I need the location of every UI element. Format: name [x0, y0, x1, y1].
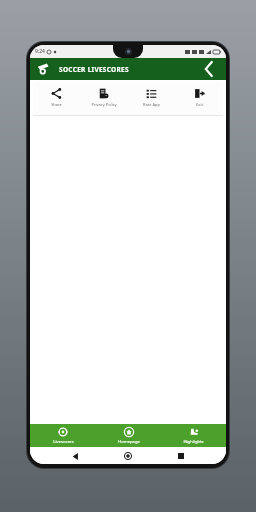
- staticText: Highlights: [183, 439, 204, 445]
- staticText: Rate App: [143, 102, 160, 107]
- button[interactable]: Homepage: [96, 424, 161, 447]
- button[interactable]: Share: [33, 82, 80, 116]
- button[interactable]: Back: [199, 59, 219, 79]
- button[interactable]: Recents: [173, 448, 189, 464]
- staticText: Homepage: [118, 439, 140, 445]
- button[interactable]: Livescores: [30, 424, 96, 447]
- button[interactable]: Back: [67, 448, 83, 464]
- button[interactable]: Exit: [175, 82, 223, 116]
- button[interactable]: Highlights: [161, 424, 226, 447]
- staticText: 9:24: [35, 48, 45, 55]
- button[interactable]: Rate App: [127, 82, 175, 116]
- staticText: Exit: [196, 102, 203, 107]
- staticText: SOCCER LIVESCORES: [59, 65, 129, 74]
- button[interactable]: Privacy Policy: [80, 82, 127, 116]
- staticText: Livescores: [53, 439, 74, 445]
- button[interactable]: Home: [120, 448, 136, 464]
- staticText: Privacy Policy: [91, 102, 117, 107]
- staticText: Share: [51, 102, 62, 107]
